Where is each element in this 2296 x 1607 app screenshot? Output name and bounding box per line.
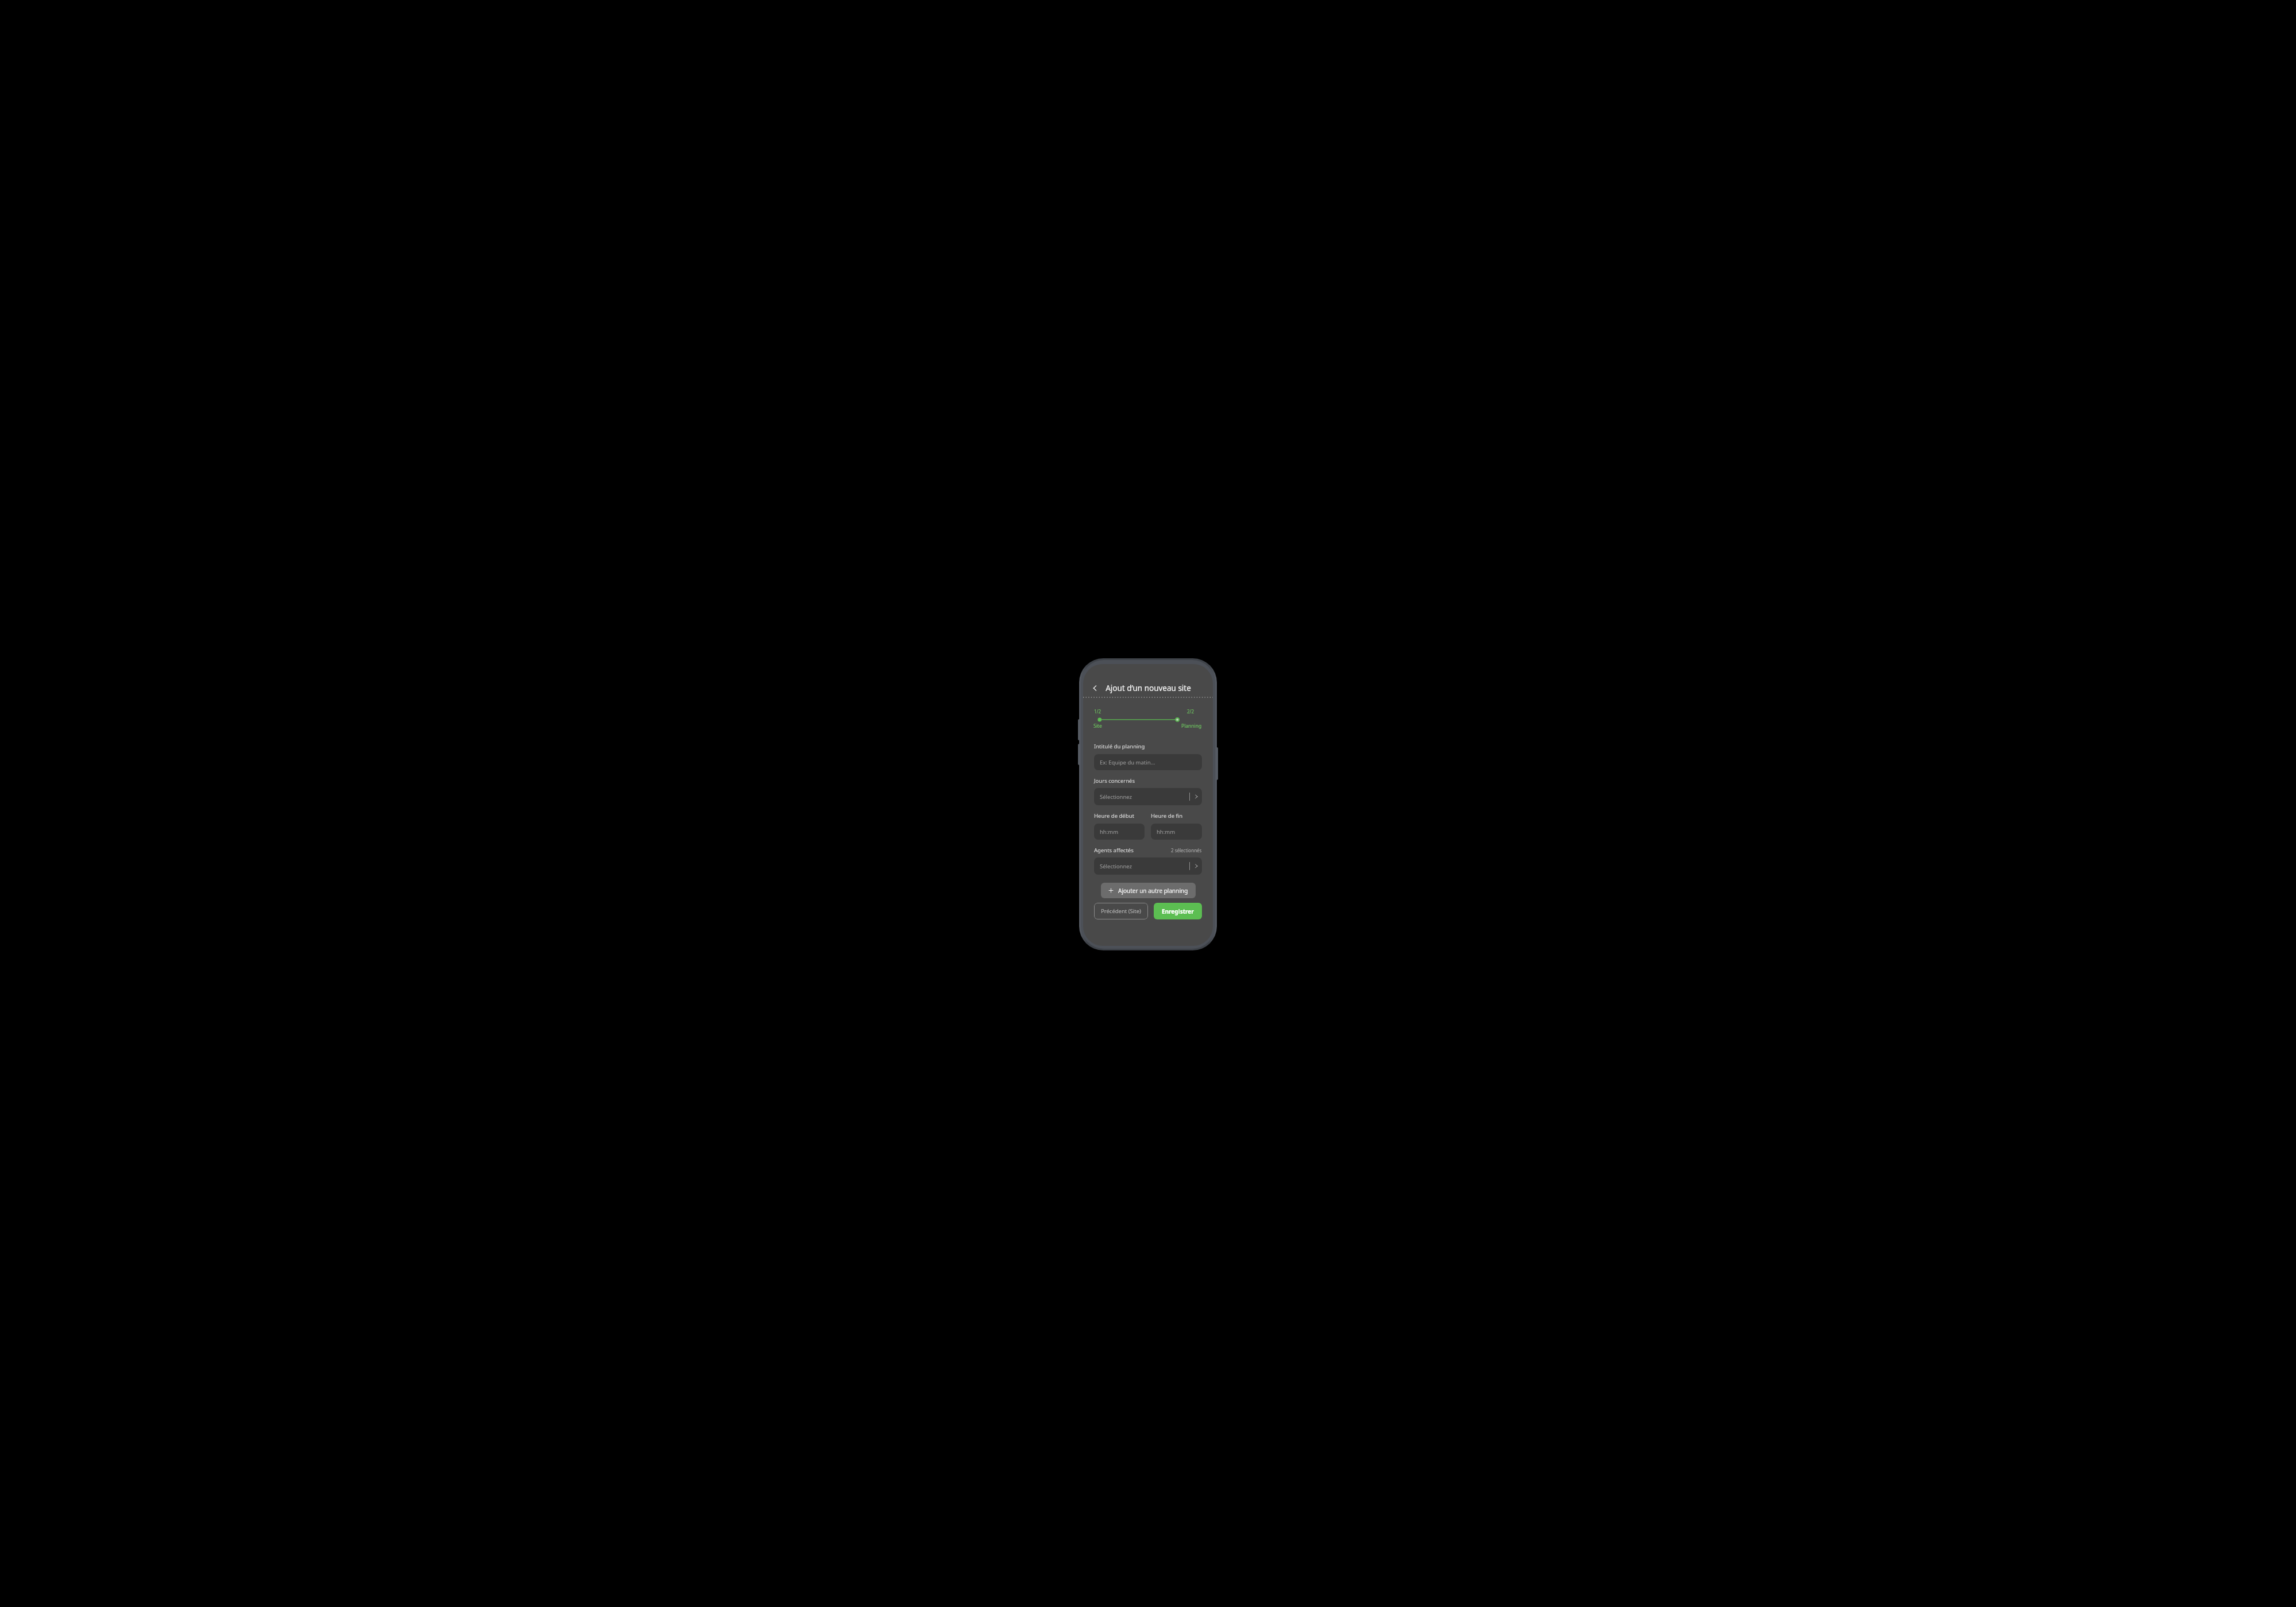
staticText: Enregistrer <box>1162 907 1194 915</box>
button[interactable]: hh:mm <box>1151 824 1202 840</box>
staticText: Heure de début <box>1094 812 1134 820</box>
staticText: Jours concernés <box>1094 777 1135 785</box>
staticText: Précédent (Site) <box>1101 907 1141 915</box>
button[interactable]: Sélectionnez <box>1094 788 1202 805</box>
button[interactable]: Back <box>1089 682 1102 694</box>
staticText: 2 sélectionnés <box>1171 847 1202 853</box>
staticText: Site <box>1093 723 1102 729</box>
staticText: Sélectionnez <box>1100 863 1133 870</box>
staticText: Agents affectés <box>1094 847 1134 854</box>
staticText: Ex: Equipe du matin... <box>1100 759 1155 766</box>
staticText: 1/2 <box>1094 708 1102 715</box>
staticText: hh:mm <box>1157 828 1176 836</box>
button[interactable]: Sélectionnez <box>1094 857 1202 875</box>
button[interactable]: Ex: Equipe du matin... <box>1094 754 1202 770</box>
staticText: Sélectionnez <box>1100 793 1133 801</box>
staticText: 2/2 <box>1187 708 1194 715</box>
staticText: hh:mm <box>1100 828 1119 836</box>
staticText: Planning <box>1181 723 1202 729</box>
button[interactable]: Enregistrer <box>1154 903 1202 919</box>
staticText: Ajouter un autre planning <box>1118 887 1188 895</box>
staticText: Ajout d’un nouveau site <box>1106 683 1191 693</box>
staticText: Intitulé du planning <box>1094 743 1145 750</box>
button[interactable]: Précédent (Site) <box>1094 903 1148 919</box>
button[interactable]: hh:mm <box>1094 824 1145 840</box>
staticText: Heure de fin <box>1151 812 1183 820</box>
button[interactable]: Ajouter un autre planning <box>1101 883 1196 898</box>
